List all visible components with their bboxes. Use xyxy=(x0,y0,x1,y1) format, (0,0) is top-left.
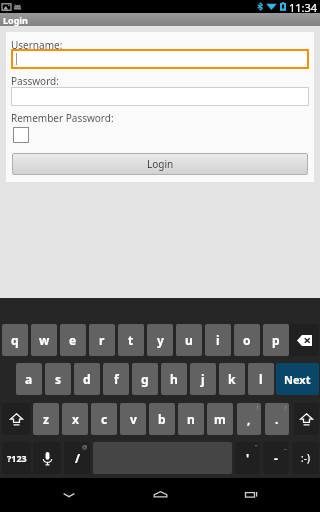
button[interactable]: shift xyxy=(2,403,30,435)
staticText: h xyxy=(170,371,178,387)
staticText: ?123 xyxy=(7,452,27,464)
staticText: e xyxy=(69,332,77,348)
staticText: p xyxy=(272,332,280,348)
staticText: g xyxy=(141,371,149,387)
staticText: . xyxy=(275,411,279,427)
button[interactable]: u xyxy=(176,324,202,356)
staticText: z xyxy=(43,411,49,427)
button[interactable]: Login xyxy=(12,153,308,175)
staticText: Username: xyxy=(11,38,63,52)
button[interactable]: l xyxy=(248,363,274,395)
staticText: l xyxy=(259,371,263,387)
staticText: o xyxy=(243,332,251,348)
button[interactable]: b xyxy=(149,403,175,435)
staticText: x xyxy=(72,411,79,427)
button[interactable]: p xyxy=(263,324,289,356)
button[interactable]: w xyxy=(31,324,57,356)
button[interactable]: smile xyxy=(292,442,319,474)
staticText: ? xyxy=(284,404,287,412)
staticText: k xyxy=(228,371,236,387)
staticText: _ xyxy=(284,443,287,451)
staticText: " xyxy=(255,443,258,451)
button[interactable]: s xyxy=(45,363,71,395)
button[interactable]: z xyxy=(33,403,59,435)
button[interactable]: k xyxy=(219,363,245,395)
staticText: c xyxy=(101,411,108,427)
button[interactable]: shift xyxy=(294,403,319,435)
staticText: u xyxy=(185,332,193,348)
button[interactable]: n xyxy=(178,403,204,435)
staticText: Password: xyxy=(11,74,59,88)
staticText: 11:34 xyxy=(289,0,318,13)
button[interactable]: x xyxy=(62,403,88,435)
button[interactable]: Username input xyxy=(11,49,309,69)
staticText: Login xyxy=(147,157,174,171)
button[interactable]: backspace xyxy=(289,324,319,356)
button[interactable]: q xyxy=(2,324,28,356)
staticText: n xyxy=(187,411,195,427)
button[interactable]: @ xyxy=(64,442,90,474)
button[interactable]: y xyxy=(147,324,173,356)
staticText: d xyxy=(83,371,91,387)
button[interactable]: m xyxy=(207,403,233,435)
button[interactable]: Recents xyxy=(229,478,273,512)
button[interactable]: ?123 xyxy=(2,442,31,474)
button[interactable]: Hide keyboard xyxy=(47,478,91,512)
button[interactable]: Password input xyxy=(11,87,309,106)
staticText: r xyxy=(99,332,105,348)
button[interactable]: t xyxy=(118,324,144,356)
staticText: i xyxy=(216,332,220,348)
button[interactable]: d xyxy=(74,363,100,395)
button[interactable]: ! xyxy=(237,403,261,435)
staticText: y xyxy=(157,332,164,348)
staticText: w xyxy=(39,332,50,348)
button[interactable]: Remember Password checkbox xyxy=(13,127,29,143)
staticText: Next xyxy=(284,372,311,387)
button[interactable]: i xyxy=(205,324,231,356)
staticText: f xyxy=(114,371,119,387)
button[interactable]: ? xyxy=(265,403,289,435)
button[interactable]: c xyxy=(91,403,117,435)
staticText: Login xyxy=(3,14,28,26)
staticText: :-) xyxy=(301,451,310,465)
button[interactable]: Home xyxy=(138,478,182,512)
staticText: - xyxy=(274,450,278,466)
staticText: a xyxy=(25,371,33,387)
button[interactable]: _ xyxy=(263,442,289,474)
staticText: b xyxy=(158,411,166,427)
staticText: v xyxy=(130,411,137,427)
staticText: s xyxy=(55,371,62,387)
staticText: q xyxy=(11,332,19,348)
staticText: ' xyxy=(246,450,250,466)
button[interactable]: o xyxy=(234,324,260,356)
staticText: j xyxy=(201,371,205,387)
staticText: Remember Password: xyxy=(11,111,114,125)
button[interactable]: a xyxy=(16,363,42,395)
button[interactable]: v xyxy=(120,403,146,435)
button[interactable]: mic xyxy=(33,442,61,474)
button[interactable]: j xyxy=(190,363,216,395)
button[interactable]: Next xyxy=(276,363,319,395)
button[interactable]: g xyxy=(132,363,158,395)
staticText: ! xyxy=(257,404,259,412)
staticText: @ xyxy=(82,443,88,451)
button[interactable]: r xyxy=(89,324,115,356)
staticText: , xyxy=(247,411,251,427)
button[interactable]: f xyxy=(103,363,129,395)
staticText: m xyxy=(214,411,226,427)
button[interactable]: h xyxy=(161,363,187,395)
staticText: / xyxy=(75,450,80,466)
staticText: t xyxy=(128,332,134,348)
button[interactable]: " xyxy=(235,442,260,474)
button[interactable]: e xyxy=(60,324,86,356)
